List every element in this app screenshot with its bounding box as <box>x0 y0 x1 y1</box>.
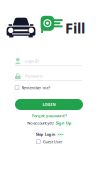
staticText: Fill <box>65 18 85 37</box>
staticText: Login ID <box>25 58 39 64</box>
staticText: No account yet? <box>27 120 54 126</box>
button[interactable]: Skip Login <box>36 132 63 137</box>
button[interactable]: Remember me? <box>15 85 50 90</box>
button[interactable]: LOGIN <box>15 99 83 110</box>
staticText: Forgot password? <box>32 113 67 118</box>
staticText: LOGIN <box>42 102 55 107</box>
staticText: Sign Up <box>56 120 72 126</box>
button[interactable]: Guest User <box>36 139 63 144</box>
staticText: Guest User <box>43 139 63 144</box>
staticText: Remember me? <box>21 85 50 90</box>
staticText: Password <box>25 73 42 79</box>
button[interactable]: Sign Up <box>56 120 72 126</box>
button[interactable]: Forgot password? <box>32 113 67 118</box>
staticText: Skip Login <box>36 132 56 137</box>
staticText: >>> <box>57 132 63 137</box>
